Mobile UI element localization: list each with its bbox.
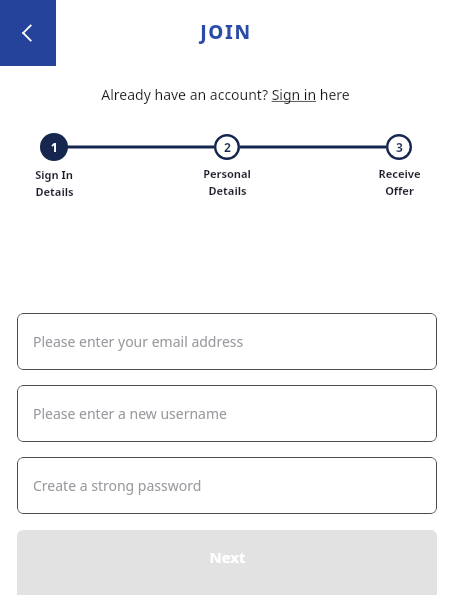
staticText: Personal [203, 166, 251, 181]
staticText: Details [208, 183, 247, 198]
staticText: Please enter your email address [33, 332, 244, 351]
button[interactable]: Please enter your email address [17, 313, 437, 370]
staticText: 1 [51, 139, 58, 155]
staticText: JOIN [200, 19, 252, 45]
button[interactable]: Already have an account? Sign in here [101, 85, 350, 104]
button[interactable]: Please enter a new username [17, 385, 437, 442]
staticText: 3 [396, 139, 403, 155]
staticText: Receive [378, 166, 421, 181]
staticText: Details [35, 184, 74, 199]
button[interactable]: 2 [171, 129, 283, 198]
button[interactable]: 1 [0, 129, 110, 199]
staticText: 2 [224, 139, 231, 155]
button[interactable]: Create a strong password [17, 457, 437, 514]
staticText: Create a strong password [33, 476, 202, 495]
button[interactable]: Back [0, 0, 56, 66]
staticText: Sign In [35, 167, 73, 182]
staticText: Next [209, 547, 246, 567]
staticText: Offer [385, 183, 414, 198]
button[interactable]: 3 [343, 129, 451, 198]
staticText: Please enter a new username [33, 404, 227, 423]
